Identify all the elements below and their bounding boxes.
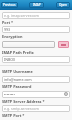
button[interactable]: info@name.com <box>2 76 70 83</box>
button[interactable]: INBOX <box>2 56 70 63</box>
staticText: Open <box>59 3 67 7</box>
button[interactable]: Previous <box>1 2 18 8</box>
staticText: e.g. smtp.server.com <box>4 106 39 111</box>
staticText: Previous <box>3 3 16 7</box>
staticText: SMTP Password <box>2 84 32 89</box>
staticText: IMAP Path Prefix <box>2 50 34 55</box>
staticText: info@name.com <box>4 77 32 82</box>
button[interactable]: IMAP <box>29 2 44 8</box>
button[interactable]: •••••••• <box>2 91 70 98</box>
staticText: Encryption <box>2 34 23 39</box>
staticText: IMAP <box>33 3 41 7</box>
staticText: •••••••• <box>4 92 15 97</box>
staticText: SMTP Port * <box>2 113 25 118</box>
staticText: INBOX <box>4 57 16 62</box>
button[interactable]: 993 <box>2 26 70 33</box>
button[interactable]: e.g. imap.server.com <box>2 12 70 19</box>
staticText: SMTP Server Address * <box>2 99 45 104</box>
staticText: Port * <box>2 20 14 25</box>
button[interactable]: Open <box>56 2 70 8</box>
staticText: 993 <box>4 27 11 32</box>
button[interactable]: Show password <box>63 91 69 97</box>
button[interactable]: e.g. smtp.server.com <box>2 105 70 112</box>
staticText: SMTP Username <box>2 69 33 74</box>
button[interactable]: Warning <box>58 41 69 48</box>
button[interactable] <box>2 41 55 48</box>
staticText: e.g. imap.server.com <box>4 13 39 18</box>
